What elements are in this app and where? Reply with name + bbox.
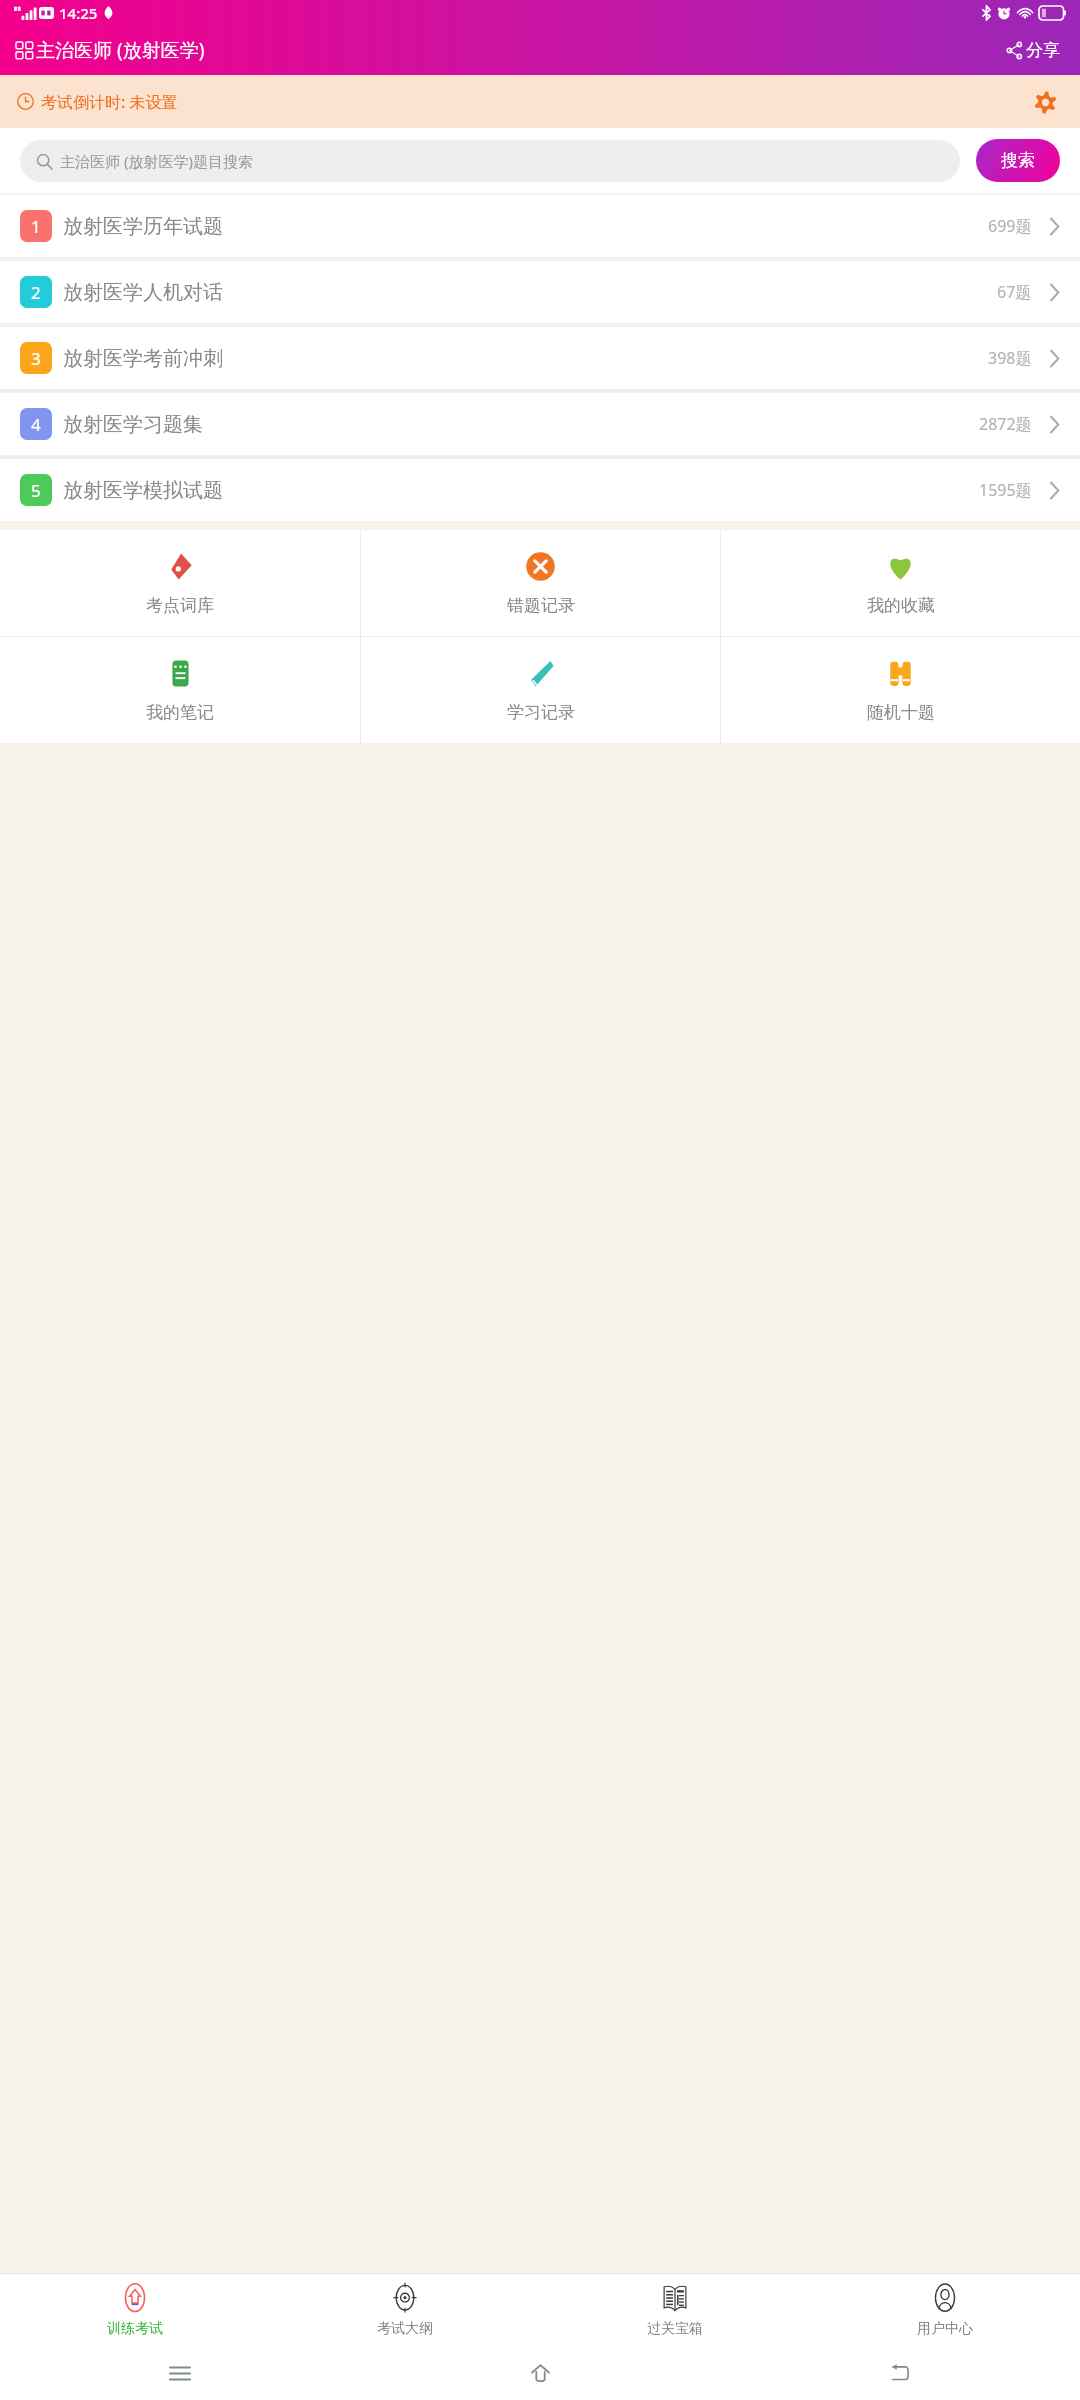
button[interactable]: 4 — [0, 393, 1080, 455]
staticText: 考试倒计时: 未设置 — [41, 91, 178, 113]
staticText: 分享 — [1026, 40, 1060, 61]
staticText: 398题 — [988, 347, 1032, 369]
staticText: 放射医学考前冲刺 — [63, 346, 223, 371]
button[interactable]: Recent apps — [160, 2356, 200, 2391]
staticText: 随机十题 — [867, 702, 935, 723]
staticText: 主治医师 (放射医学)题目搜索 — [60, 151, 253, 171]
button[interactable]: 我的收藏 — [721, 530, 1080, 636]
staticText: 我的笔记 — [146, 702, 214, 723]
button[interactable]: 搜索 — [976, 139, 1060, 182]
staticText: 67题 — [997, 281, 1032, 303]
staticText: 放射医学习题集 — [63, 412, 203, 437]
staticText: 放射医学模拟试题 — [63, 478, 223, 503]
staticText: 14:25 — [59, 3, 98, 23]
staticText: 搜索 — [1001, 150, 1035, 171]
button[interactable]: Back — [881, 2354, 920, 2392]
staticText: 考点词库 — [146, 595, 214, 616]
staticText: 3 — [31, 347, 41, 370]
button[interactable]: 训练考试 — [0, 2274, 270, 2346]
button[interactable]: 错题记录 — [361, 530, 720, 636]
button[interactable]: 5 — [0, 459, 1080, 521]
staticText: 主治医师 (放射医学) — [36, 37, 205, 63]
staticText: 放射医学人机对话 — [63, 280, 223, 305]
staticText: 1 — [31, 215, 41, 238]
button[interactable]: Home — [521, 2354, 560, 2393]
button[interactable]: 分享 — [1004, 34, 1062, 67]
button[interactable]: 1 — [0, 195, 1080, 257]
staticText: 我的收藏 — [867, 595, 935, 616]
staticText: 5 — [31, 479, 41, 502]
staticText: 用户中心 — [917, 2320, 973, 2338]
button[interactable]: 随机十题 — [721, 637, 1080, 743]
button[interactable]: Settings — [1030, 87, 1060, 117]
button[interactable]: 考试倒计时: 未设置 — [0, 75, 1080, 128]
button[interactable]: 过关宝箱 — [540, 2274, 810, 2346]
staticText: 2872题 — [979, 413, 1032, 435]
staticText: 训练考试 — [107, 2320, 163, 2338]
button[interactable]: 考试大纲 — [270, 2274, 540, 2346]
staticText: 4 — [31, 413, 41, 436]
staticText: 699题 — [988, 215, 1032, 237]
staticText: 过关宝箱 — [647, 2320, 703, 2338]
button[interactable]: 我的笔记 — [0, 637, 360, 743]
staticText: 2 — [31, 281, 41, 304]
staticText: 学习记录 — [507, 702, 575, 723]
staticText: 考试大纲 — [377, 2320, 433, 2338]
button[interactable]: 2 — [0, 261, 1080, 323]
staticText: 错题记录 — [507, 595, 575, 616]
button[interactable]: 学习记录 — [361, 637, 720, 743]
staticText: 放射医学历年试题 — [63, 214, 223, 239]
button[interactable]: 考点词库 — [0, 530, 360, 636]
button[interactable]: 用户中心 — [810, 2274, 1080, 2346]
staticText: 1595题 — [979, 479, 1032, 501]
button[interactable]: 主治医师 (放射医学)题目搜索 — [20, 140, 960, 182]
button[interactable]: 3 — [0, 327, 1080, 389]
